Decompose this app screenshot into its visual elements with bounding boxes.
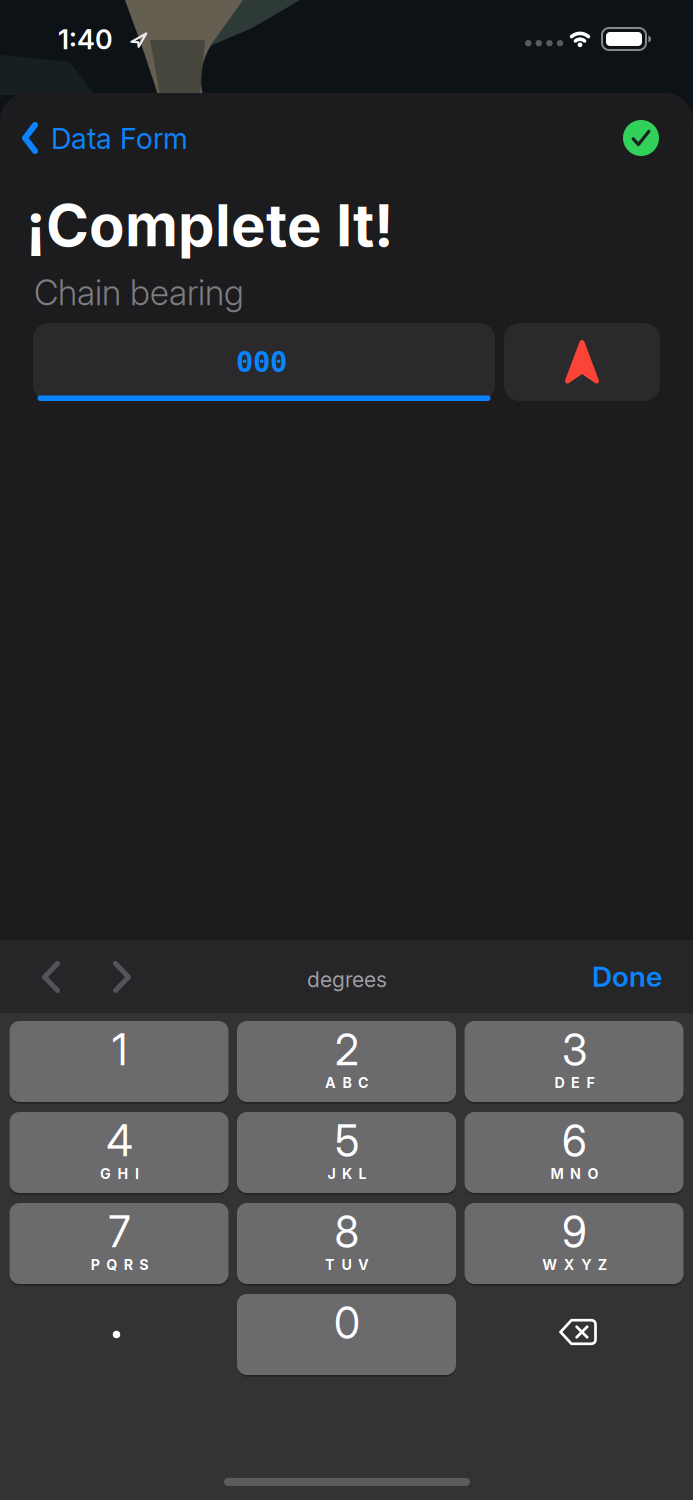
staticText: 1: [112, 1024, 127, 1075]
staticText: Done: [592, 959, 662, 994]
staticText: 0: [334, 1297, 360, 1348]
button[interactable]: 2: [237, 1021, 456, 1102]
staticText: 9: [562, 1206, 587, 1257]
button[interactable]: Done: [578, 940, 676, 1013]
button[interactable]: 0: [237, 1294, 456, 1375]
staticText: PQRS: [91, 1256, 148, 1274]
button[interactable]: Previous field: [29, 949, 73, 1005]
staticText: Chain bearing: [34, 272, 244, 314]
staticText: GHI: [100, 1165, 139, 1183]
button[interactable]: Delete: [464, 1294, 683, 1375]
button[interactable]: 6: [464, 1112, 683, 1193]
button[interactable]: Save: [623, 120, 659, 156]
staticText: 000: [236, 345, 287, 379]
staticText: Data Form: [51, 121, 188, 156]
button[interactable]: 8: [237, 1203, 456, 1284]
staticText: MNO: [550, 1165, 598, 1183]
staticText: 8: [334, 1206, 359, 1257]
staticText: 2: [335, 1024, 359, 1075]
staticText: 1:40: [58, 23, 113, 56]
button[interactable]: 1: [9, 1021, 228, 1102]
button[interactable]: 7: [9, 1203, 228, 1284]
button[interactable]: 5: [237, 1112, 456, 1193]
staticText: 5: [335, 1115, 359, 1166]
staticText: 4: [106, 1115, 132, 1166]
button[interactable]: 4: [9, 1112, 228, 1193]
staticText: 6: [562, 1115, 587, 1166]
staticText: WXYZ: [542, 1256, 607, 1274]
staticText: degrees: [307, 967, 387, 992]
button[interactable]: Use compass bearing: [504, 323, 660, 401]
staticText: 7: [108, 1206, 130, 1257]
button[interactable]: Next field: [100, 949, 144, 1005]
staticText: JKL: [327, 1165, 366, 1183]
staticText: ¡Complete It!: [26, 190, 394, 260]
button[interactable]: 3: [464, 1021, 683, 1102]
staticText: ABC: [325, 1074, 369, 1092]
button[interactable]: Data Form: [22, 116, 192, 160]
button[interactable]: 9: [464, 1203, 683, 1284]
staticText: DEF: [554, 1074, 594, 1092]
staticText: 3: [562, 1024, 587, 1075]
staticText: TUV: [325, 1256, 369, 1274]
button[interactable]: Chain bearing, 000: [33, 323, 495, 401]
button[interactable]: Decimal point: [9, 1294, 228, 1375]
